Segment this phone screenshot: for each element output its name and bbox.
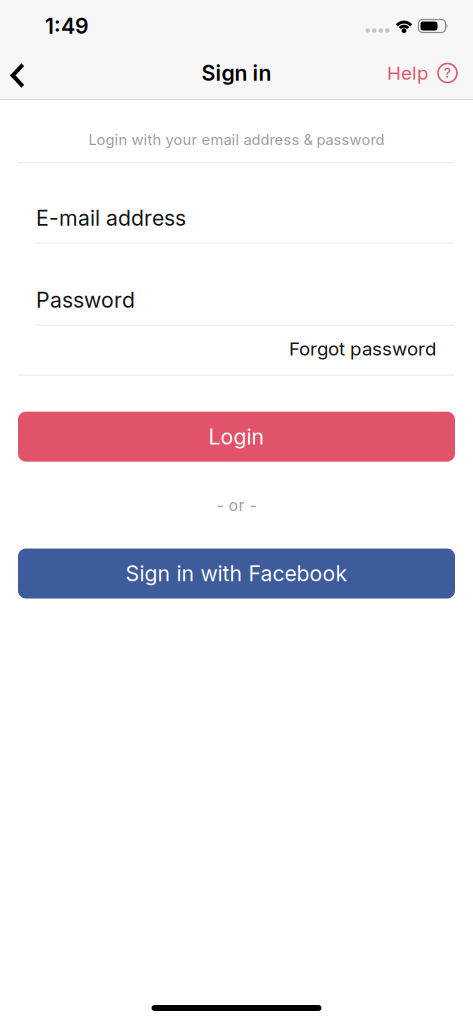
staticText: Login (208, 424, 264, 449)
button[interactable]: Login (18, 412, 455, 462)
staticText: Password (36, 287, 135, 313)
staticText: 1:49 (45, 13, 89, 39)
button[interactable]: Forgot password (289, 338, 436, 360)
staticText: ? (444, 65, 451, 81)
staticText: - or - (216, 496, 256, 515)
staticText: Forgot password (289, 338, 436, 360)
staticText: Sign in with Facebook (125, 561, 347, 586)
button[interactable]: Sign in with Facebook (18, 548, 455, 598)
staticText: Sign in (201, 60, 271, 86)
staticText: E-mail address (36, 205, 186, 230)
staticText: Login with your email address & password (88, 131, 384, 148)
staticText: Help (387, 62, 428, 84)
button[interactable]: Back (0, 47, 25, 99)
button[interactable]: Help (387, 62, 473, 84)
